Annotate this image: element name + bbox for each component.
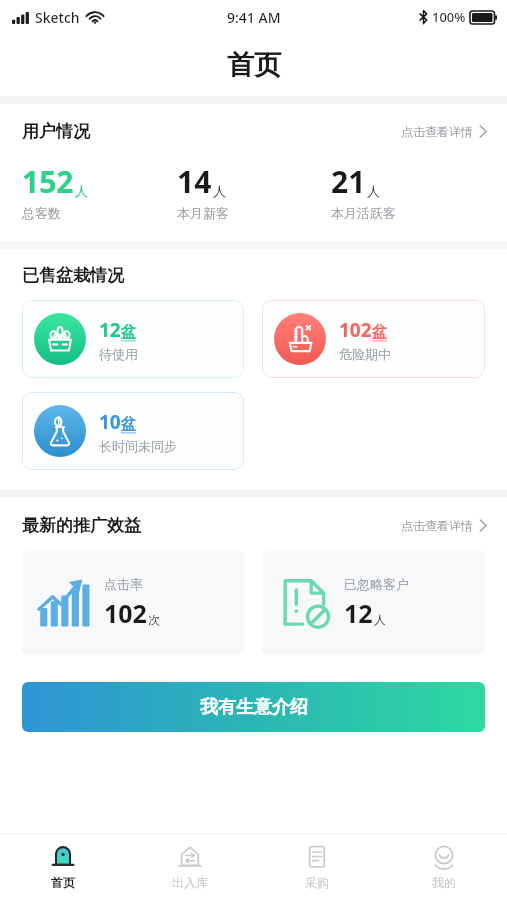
staticText: 人 bbox=[213, 183, 226, 199]
staticText: 10 bbox=[99, 409, 121, 435]
button[interactable]: 已忽略客户 bbox=[262, 551, 485, 654]
staticText: 人 bbox=[367, 183, 380, 199]
staticText: 待使用 bbox=[99, 346, 138, 362]
staticText: 长时间未同步 bbox=[99, 438, 177, 454]
button[interactable]: 10 bbox=[22, 392, 244, 470]
button[interactable]: 14 bbox=[177, 161, 331, 221]
button[interactable]: 点击率 bbox=[22, 551, 244, 654]
button[interactable]: 出入库 bbox=[126, 834, 253, 900]
staticText: 102 bbox=[339, 317, 372, 343]
staticText: 盆 bbox=[372, 323, 387, 342]
staticText: 次 bbox=[148, 612, 160, 627]
button[interactable]: 102 bbox=[262, 300, 485, 378]
button[interactable]: 21 bbox=[331, 161, 485, 221]
staticText: 102 bbox=[104, 596, 147, 630]
button[interactable]: 152 bbox=[22, 161, 177, 221]
button[interactable]: 12 bbox=[22, 300, 244, 378]
staticText: 人 bbox=[75, 183, 88, 199]
staticText: 本月新客 bbox=[177, 205, 229, 221]
staticText: 出入库 bbox=[172, 875, 208, 890]
staticText: 152 bbox=[22, 161, 74, 202]
staticText: 本月活跃客 bbox=[331, 205, 396, 221]
staticText: 14 bbox=[177, 161, 212, 202]
staticText: 最新的推广效益 bbox=[22, 515, 141, 536]
staticText: 12 bbox=[99, 317, 121, 343]
staticText: 21 bbox=[331, 161, 366, 202]
staticText: 采购 bbox=[305, 875, 329, 890]
button[interactable]: 采购 bbox=[253, 834, 380, 900]
staticText: 首页 bbox=[51, 875, 75, 890]
staticText: 9:41 AM bbox=[227, 8, 281, 27]
staticText: 总客数 bbox=[22, 205, 61, 221]
staticText: 首页 bbox=[227, 48, 281, 82]
staticText: 100% bbox=[432, 8, 466, 26]
staticText: 已忽略客户 bbox=[344, 576, 409, 592]
staticText: 点击查看详情 bbox=[401, 518, 473, 533]
staticText: 点击率 bbox=[104, 576, 143, 592]
staticText: 点击查看详情 bbox=[401, 124, 473, 139]
staticText: 盆 bbox=[121, 415, 136, 434]
staticText: 我有生意介绍 bbox=[200, 696, 308, 719]
staticText: Sketch bbox=[35, 8, 80, 27]
staticText: 用户情况 bbox=[22, 121, 90, 142]
staticText: 我的 bbox=[432, 875, 456, 890]
staticText: 已售盆栽情况 bbox=[22, 265, 124, 286]
button[interactable]: 我有生意介绍 bbox=[22, 682, 485, 732]
button[interactable]: 点击查看详情 bbox=[399, 514, 489, 537]
button[interactable]: 点击查看详情 bbox=[399, 120, 489, 143]
staticText: 人 bbox=[374, 612, 386, 627]
staticText: 盆 bbox=[121, 323, 136, 342]
staticText: 危险期中 bbox=[339, 346, 391, 362]
staticText: 12 bbox=[344, 596, 373, 630]
button[interactable]: 首页 bbox=[0, 834, 126, 900]
button[interactable]: 我的 bbox=[380, 834, 507, 900]
